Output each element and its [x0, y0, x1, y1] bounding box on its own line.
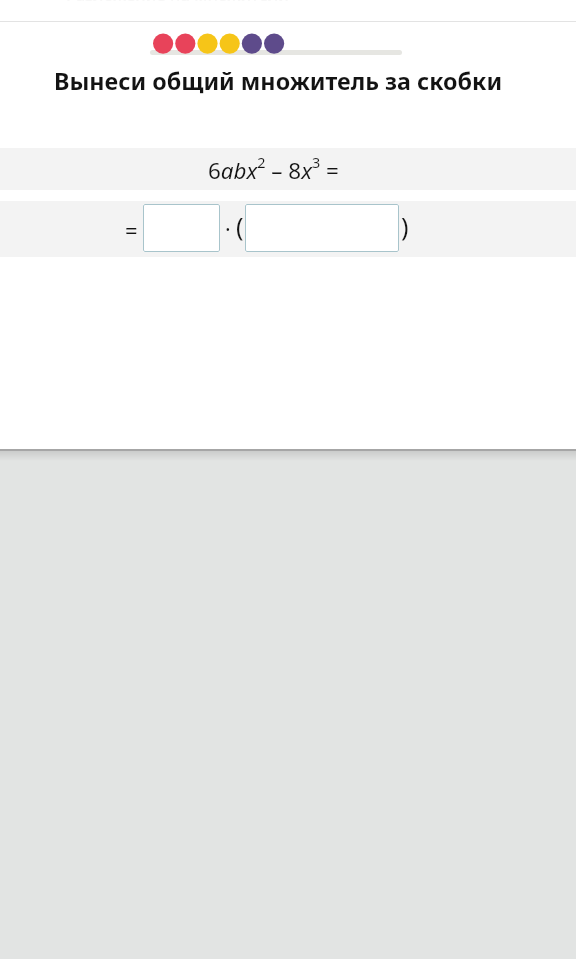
staticText: Вынеси общий множитель за скобки: [54, 65, 503, 97]
staticText: ): [401, 209, 409, 243]
button[interactable]: Answer field 1: [143, 204, 220, 252]
staticText: =: [125, 215, 138, 245]
staticText: (: [236, 209, 244, 243]
staticText: ·: [225, 215, 231, 244]
button[interactable]: Answer field 2: [245, 204, 399, 252]
staticText: 6abx2 – 8x3 =: [208, 153, 339, 186]
